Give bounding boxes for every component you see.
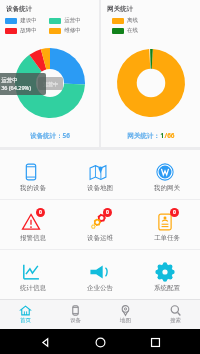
staticText: 故障中	[20, 27, 37, 34]
staticText: 统计信息	[20, 284, 46, 292]
staticText: 设备统计：56	[30, 131, 70, 140]
staticText: 0	[173, 209, 176, 216]
staticText: /66	[164, 131, 175, 140]
staticText: 运营中	[64, 17, 81, 24]
staticText: 我的网关	[154, 184, 180, 192]
button[interactable]: 统计信息	[0, 250, 66, 299]
staticText: 建设中	[20, 17, 37, 24]
staticText: 工单任务	[154, 234, 180, 242]
button[interactable]: 0	[0, 200, 66, 249]
staticText: 1	[160, 131, 164, 140]
button[interactable]: 设备地图	[66, 150, 133, 199]
staticText: 在线	[127, 27, 138, 34]
button[interactable]: 0	[133, 200, 200, 249]
button[interactable]: Recents	[145, 332, 165, 352]
staticText: 系统配置	[154, 284, 180, 292]
button[interactable]: Home	[90, 332, 110, 352]
staticText: 企业公告	[87, 284, 113, 292]
staticText: 搜索	[170, 317, 181, 324]
staticText: 离线	[127, 17, 138, 24]
staticText: 网关统计：	[127, 132, 160, 140]
button[interactable]: 企业公告	[66, 250, 133, 299]
staticText: 36 (64.29%)	[1, 84, 31, 91]
staticText: 设备地图	[87, 184, 113, 192]
staticText: 0	[106, 209, 109, 216]
staticText: 设备统计	[6, 5, 32, 13]
staticText: 地图	[120, 317, 131, 324]
button[interactable]: 设备	[50, 300, 100, 329]
button[interactable]: 0	[66, 200, 133, 249]
staticText: 0	[39, 209, 42, 216]
button[interactable]: 系统配置	[133, 250, 200, 299]
staticText: 设备运维	[87, 234, 113, 242]
staticText: 运营中	[43, 81, 58, 87]
staticText: 网关统计	[107, 5, 133, 13]
staticText: 我的设备	[20, 184, 46, 192]
button[interactable]: 我的网关	[133, 150, 200, 199]
staticText: 运营中	[1, 77, 18, 84]
staticText: 报警信息	[20, 234, 46, 242]
button[interactable]: Back	[35, 332, 55, 352]
button[interactable]: 我的设备	[0, 150, 66, 199]
staticText: 首页	[20, 317, 31, 324]
button[interactable]: 搜索	[150, 300, 200, 329]
button[interactable]: 地图	[100, 300, 150, 329]
button[interactable]: 首页	[0, 300, 50, 329]
staticText: 维修中	[64, 27, 81, 34]
staticText: 设备	[70, 317, 81, 324]
